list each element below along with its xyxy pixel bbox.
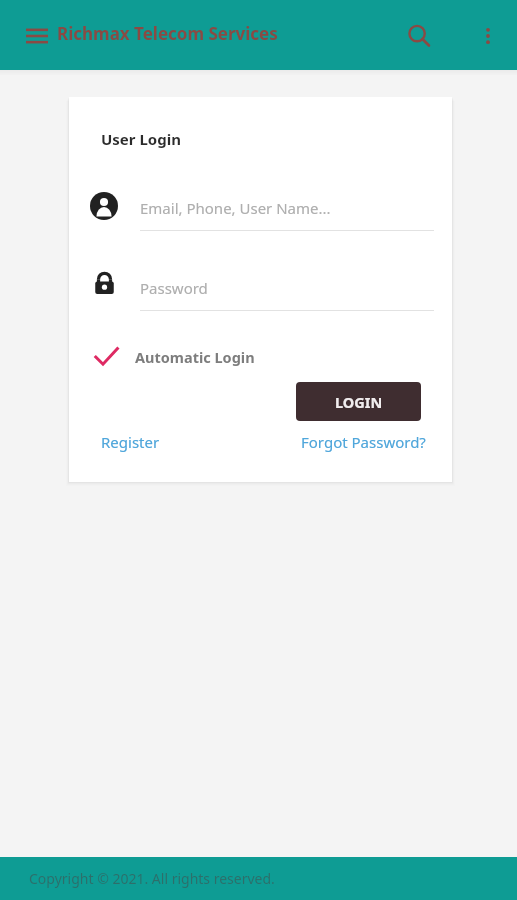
staticText: LOGIN <box>335 392 383 412</box>
button[interactable]: Password <box>89 262 434 317</box>
staticText: Copyright © 2021. All rights reserved. <box>29 869 275 888</box>
staticText: Richmax Telecom Services <box>57 22 278 45</box>
staticText: Automatic Login <box>135 347 255 367</box>
staticText: Email, Phone, User Name... <box>140 198 331 218</box>
button[interactable]: More options <box>466 14 510 58</box>
button[interactable]: Automatic Login <box>91 340 255 374</box>
button[interactable]: Email, Phone, User Name... <box>89 182 434 237</box>
button[interactable]: Forgot Password? <box>291 428 436 456</box>
button[interactable]: Register <box>91 428 170 456</box>
button[interactable]: Open navigation menu <box>18 17 56 55</box>
staticText: Password <box>140 278 208 298</box>
staticText: User Login <box>101 129 181 149</box>
button[interactable]: LOGIN <box>296 382 421 421</box>
staticText: Forgot Password? <box>301 432 426 452</box>
button[interactable]: Search <box>397 14 441 58</box>
staticText: Register <box>101 432 160 452</box>
